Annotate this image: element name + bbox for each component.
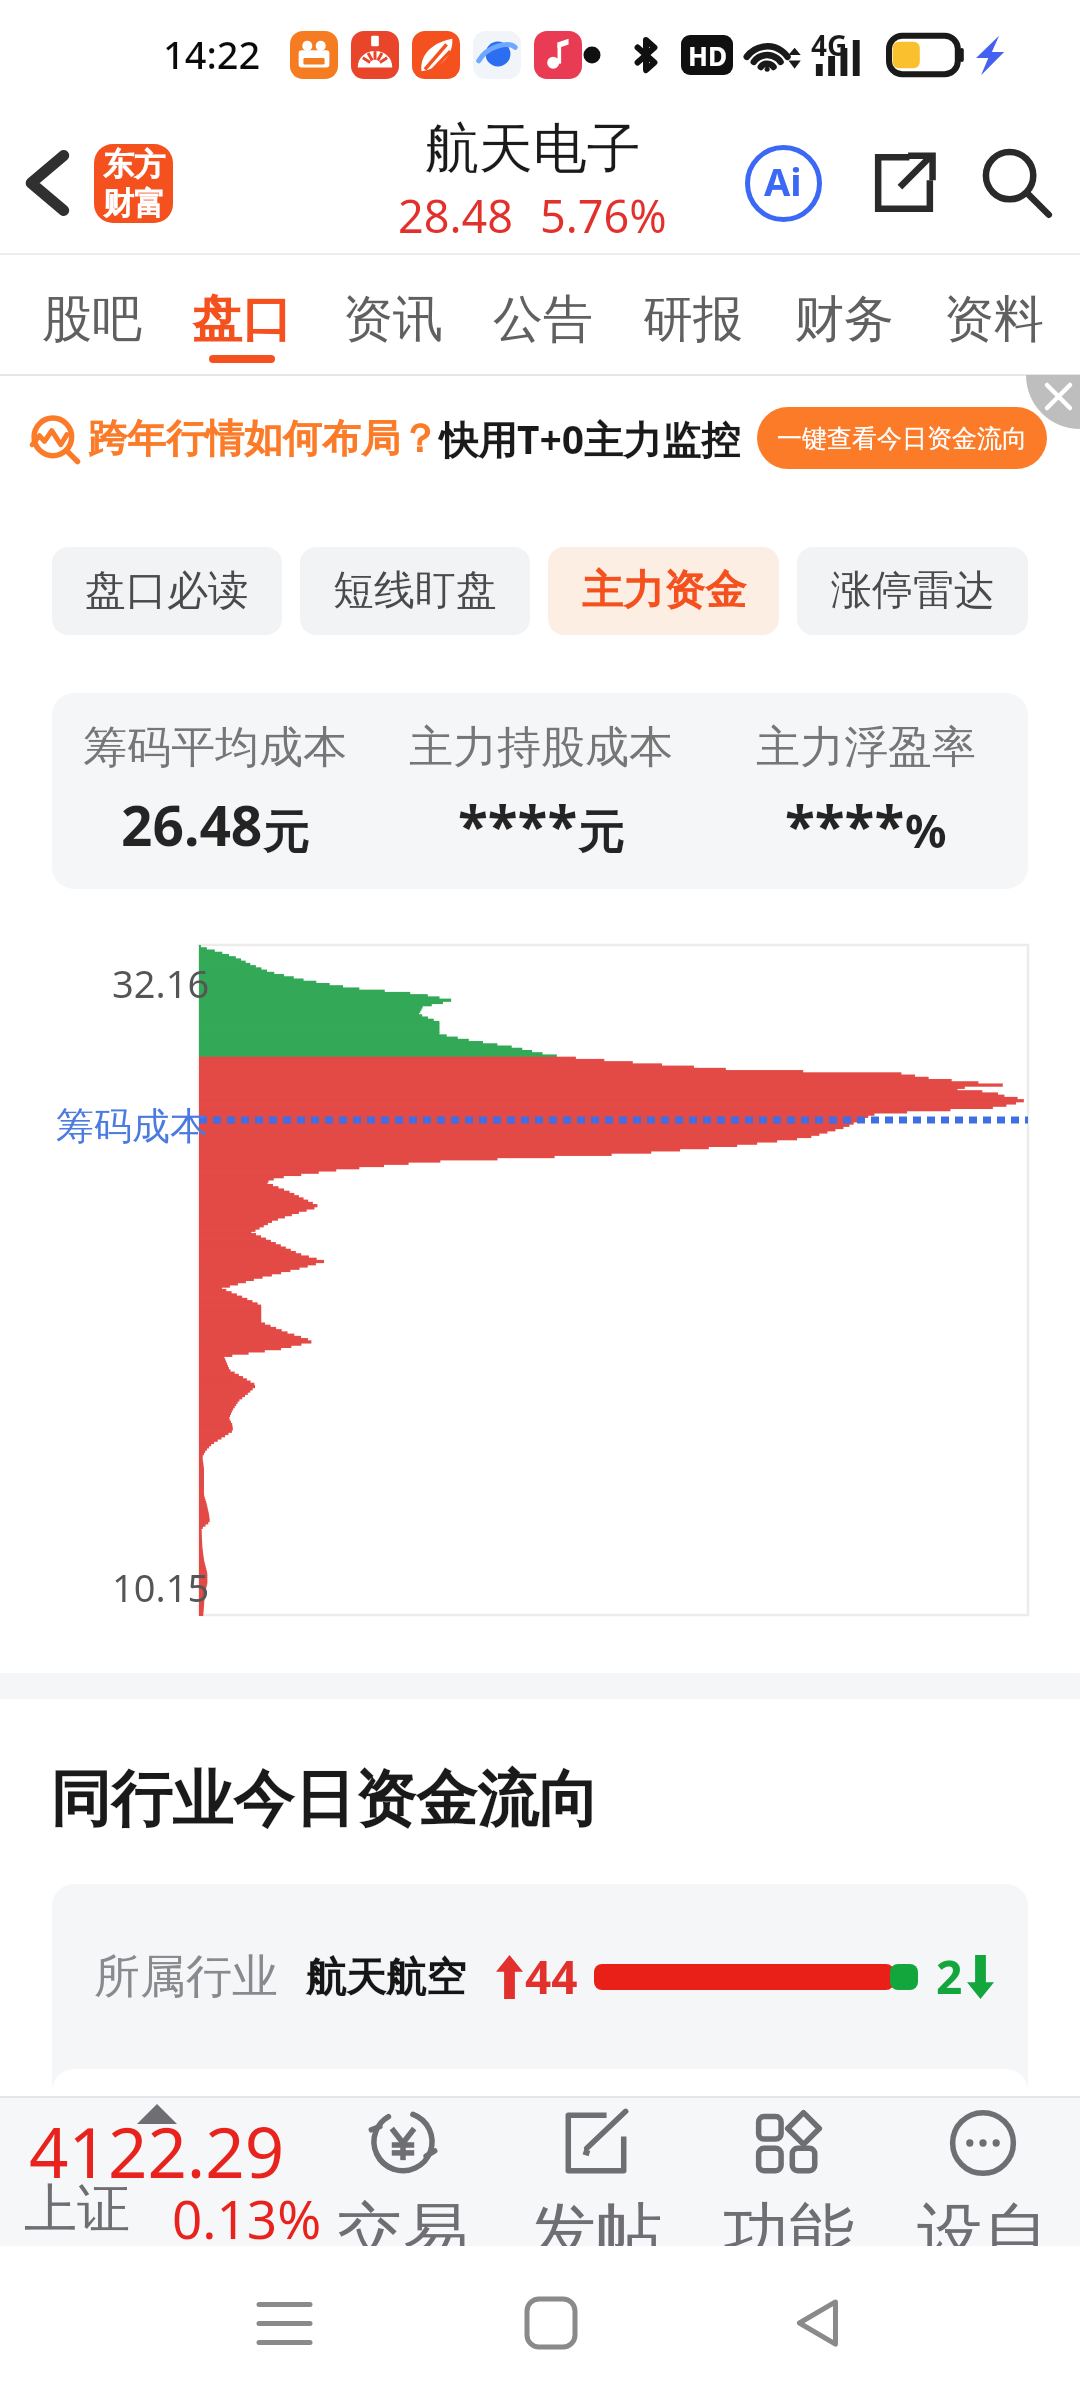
staticText: 资讯 bbox=[343, 288, 443, 351]
staticText: Ai bbox=[764, 155, 802, 207]
staticText: **** bbox=[458, 787, 578, 862]
staticText: 44 bbox=[525, 1945, 578, 2008]
staticText: 元 bbox=[263, 804, 309, 862]
staticText: **** bbox=[785, 787, 905, 862]
staticText: 上证 bbox=[24, 2176, 130, 2243]
staticText: % bbox=[905, 799, 947, 862]
staticText: 10.15 bbox=[112, 1561, 210, 1613]
staticText: 发帖 bbox=[530, 2192, 662, 2275]
staticText: 4G bbox=[811, 26, 848, 64]
staticText: 航天电子 bbox=[425, 115, 641, 183]
button[interactable]: 盘口必读 bbox=[52, 547, 282, 635]
button[interactable]: Close banner bbox=[1026, 375, 1080, 429]
staticText: 短线盯盘 bbox=[333, 565, 497, 617]
button[interactable]: 筹码平均成本 bbox=[52, 693, 1028, 889]
button[interactable]: 发帖 bbox=[499, 2096, 692, 2246]
staticText: 14:22 bbox=[163, 28, 261, 80]
button[interactable]: 资料 bbox=[944, 255, 1044, 376]
button[interactable]: 涨停雷达 bbox=[797, 547, 1028, 635]
staticText: 2 bbox=[936, 1945, 963, 2008]
staticText: 盘口 bbox=[192, 288, 292, 351]
staticText: 航天航空 bbox=[306, 1952, 466, 2002]
staticText: 4122.29 bbox=[29, 2104, 285, 2198]
staticText: 财务 bbox=[794, 288, 894, 351]
staticText: 32.16 bbox=[112, 957, 210, 1009]
button[interactable]: Back bbox=[0, 123, 94, 243]
staticText: 5.76% bbox=[540, 185, 667, 246]
button[interactable]: 功能 bbox=[692, 2096, 886, 2246]
button[interactable]: 4122.29 bbox=[0, 2096, 306, 2246]
staticText: 公告 bbox=[493, 288, 593, 351]
button[interactable]: Recents bbox=[242, 2281, 326, 2365]
staticText: 东方 bbox=[103, 145, 165, 184]
staticText: 股吧 bbox=[42, 288, 142, 351]
staticText: 主力持股成本 bbox=[409, 720, 673, 775]
staticText: 主力资金 bbox=[582, 565, 746, 617]
staticText: 同行业今日资金流向 bbox=[50, 1761, 599, 1838]
staticText: 功能 bbox=[723, 2192, 855, 2275]
staticText: 主力浮盈率 bbox=[756, 720, 976, 775]
staticText: 0.13% bbox=[172, 2182, 322, 2254]
staticText: 交易 bbox=[337, 2192, 469, 2275]
staticText: 快用T+0主力监控 bbox=[439, 412, 741, 465]
staticText: 26.48 bbox=[121, 787, 263, 862]
button[interactable]: 设自 bbox=[886, 2096, 1080, 2246]
staticText: HD bbox=[688, 38, 727, 73]
staticText: 筹码平均成本 bbox=[83, 720, 347, 775]
button[interactable]: 短线盯盘 bbox=[300, 547, 530, 635]
button[interactable]: AI assistant bbox=[720, 128, 846, 238]
button[interactable]: 资讯 bbox=[343, 255, 443, 376]
staticText: 盘口必读 bbox=[85, 565, 249, 617]
staticText: 研报 bbox=[643, 288, 743, 351]
button[interactable]: East Money bbox=[94, 144, 173, 223]
button[interactable]: 公告 bbox=[493, 255, 593, 376]
button[interactable]: 研报 bbox=[643, 255, 743, 376]
staticText: 跨年行情如何布局？ bbox=[88, 414, 439, 463]
staticText: 一键查看今日资金流向 bbox=[777, 423, 1027, 454]
staticText: 涨停雷达 bbox=[831, 565, 995, 617]
staticText: 筹码成本 bbox=[56, 1102, 208, 1150]
button[interactable]: 财务 bbox=[794, 255, 894, 376]
staticText: 28.48 bbox=[398, 185, 514, 246]
staticText: 所属行业 bbox=[94, 1948, 278, 2006]
staticText: 元 bbox=[578, 804, 624, 862]
staticText: 财富 bbox=[103, 184, 165, 223]
button[interactable]: 主力资金 bbox=[548, 547, 779, 635]
button[interactable]: Share bbox=[846, 128, 962, 238]
button[interactable]: 一键查看今日资金流向 bbox=[757, 407, 1047, 469]
button[interactable]: 盘口 bbox=[192, 255, 292, 376]
button[interactable]: 股吧 bbox=[42, 255, 142, 376]
staticText: 资料 bbox=[944, 288, 1044, 351]
button[interactable]: 所属行业 bbox=[52, 1884, 1028, 2069]
button[interactable]: Home bbox=[509, 2281, 593, 2365]
button[interactable]: Search bbox=[962, 128, 1072, 238]
staticText: 设自 bbox=[917, 2192, 1049, 2275]
button[interactable]: Back bbox=[775, 2281, 859, 2365]
button[interactable]: 交易 bbox=[306, 2096, 499, 2246]
